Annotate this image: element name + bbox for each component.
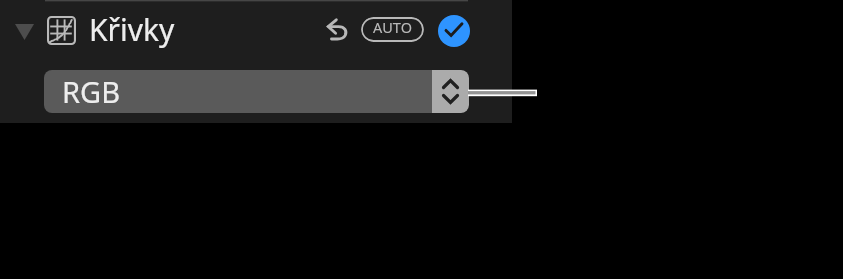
staticText: Křivky bbox=[89, 9, 175, 50]
button[interactable]: Undo bbox=[320, 12, 356, 48]
button[interactable]: RGB bbox=[44, 70, 469, 113]
button[interactable]: Apply bbox=[438, 15, 470, 47]
button[interactable]: Change channel bbox=[432, 70, 469, 113]
button[interactable]: Collapse section bbox=[9, 16, 39, 47]
staticText: AUTO bbox=[373, 17, 412, 37]
button[interactable]: AUTO bbox=[361, 17, 424, 42]
staticText: RGB bbox=[62, 72, 121, 111]
